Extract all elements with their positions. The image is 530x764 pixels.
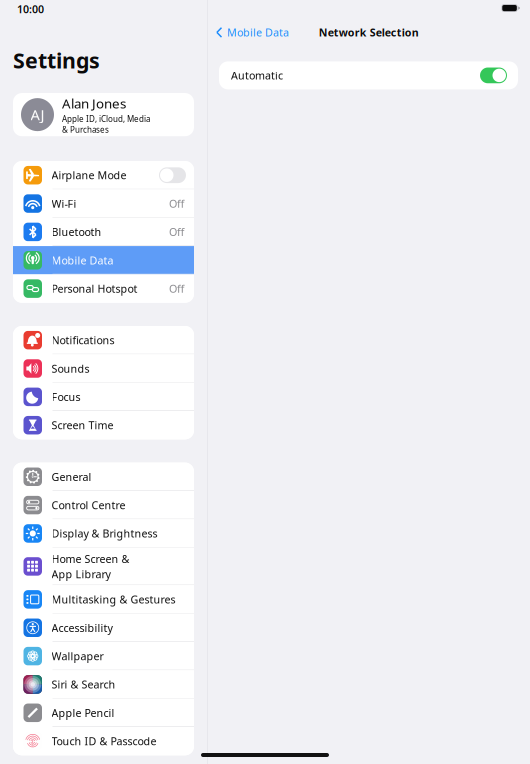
staticText: Alan Jones	[62, 94, 126, 112]
staticText: AJ	[30, 105, 44, 124]
button[interactable]: General	[13, 463, 194, 491]
staticText: App Library	[51, 567, 110, 581]
staticText: & Purchases	[62, 124, 109, 135]
button[interactable]: Bluetooth	[13, 218, 194, 246]
staticText: Personal Hotspot	[51, 281, 137, 296]
button[interactable]: Display & Brightness	[13, 519, 194, 548]
button[interactable]: Wallpaper	[13, 642, 194, 670]
staticText: Multitasking & Gestures	[51, 592, 175, 606]
button[interactable]: Mobile Data	[13, 246, 194, 274]
button[interactable]: Siri & Search	[13, 670, 194, 699]
button[interactable]: Home Screen &	[13, 548, 194, 585]
staticText: Bluetooth	[51, 225, 101, 239]
button[interactable]: Sounds	[13, 354, 194, 383]
staticText: Settings	[13, 46, 100, 74]
staticText: Mobile Data	[227, 25, 289, 39]
staticText: Accessibility	[51, 621, 112, 635]
staticText: Wallpaper	[51, 649, 103, 663]
button[interactable]: AJ	[0, 93, 194, 136]
button[interactable]: Focus	[13, 383, 194, 411]
staticText: Display & Brightness	[51, 526, 157, 541]
button[interactable]: Airplane Mode	[13, 161, 194, 189]
button[interactable]: Notifications	[13, 326, 194, 354]
button[interactable]: Multitasking & Gestures	[13, 585, 194, 614]
staticText: General	[51, 470, 91, 484]
button[interactable]: Accessibility	[13, 614, 194, 642]
button[interactable]: Control Centre	[13, 491, 194, 519]
button[interactable]: Automatic	[208, 61, 530, 89]
button[interactable]: Screen Time	[13, 411, 194, 439]
staticText: Off	[169, 281, 184, 296]
staticText: Apple Pencil	[51, 706, 114, 720]
staticText: Mobile Data	[51, 253, 113, 267]
staticText: Home Screen &	[51, 552, 129, 566]
staticText: Off	[169, 225, 184, 239]
staticText: Network Selection	[319, 25, 419, 39]
staticText: Automatic	[231, 68, 283, 82]
staticText: Airplane Mode	[51, 168, 126, 182]
staticText: Notifications	[51, 333, 114, 347]
button[interactable]: Apple Pencil	[13, 699, 194, 727]
staticText: Screen Time	[51, 418, 113, 432]
button[interactable]: Mobile Data	[208, 21, 289, 43]
staticText: Siri & Search	[51, 677, 115, 692]
staticText: Control Centre	[51, 498, 125, 512]
staticText: Touch ID & Passcode	[51, 734, 156, 748]
button[interactable]: Personal Hotspot	[13, 274, 194, 303]
staticText: 10:00	[17, 2, 44, 16]
staticText: Off	[169, 196, 184, 211]
staticText: Focus	[51, 390, 80, 404]
button[interactable]: Touch ID & Passcode	[13, 727, 194, 755]
staticText: Apple ID, iCloud, Media	[62, 114, 150, 124]
staticText: Sounds	[51, 361, 89, 376]
staticText: Wi-Fi	[51, 196, 76, 211]
button[interactable]: Wi-Fi	[13, 189, 194, 218]
